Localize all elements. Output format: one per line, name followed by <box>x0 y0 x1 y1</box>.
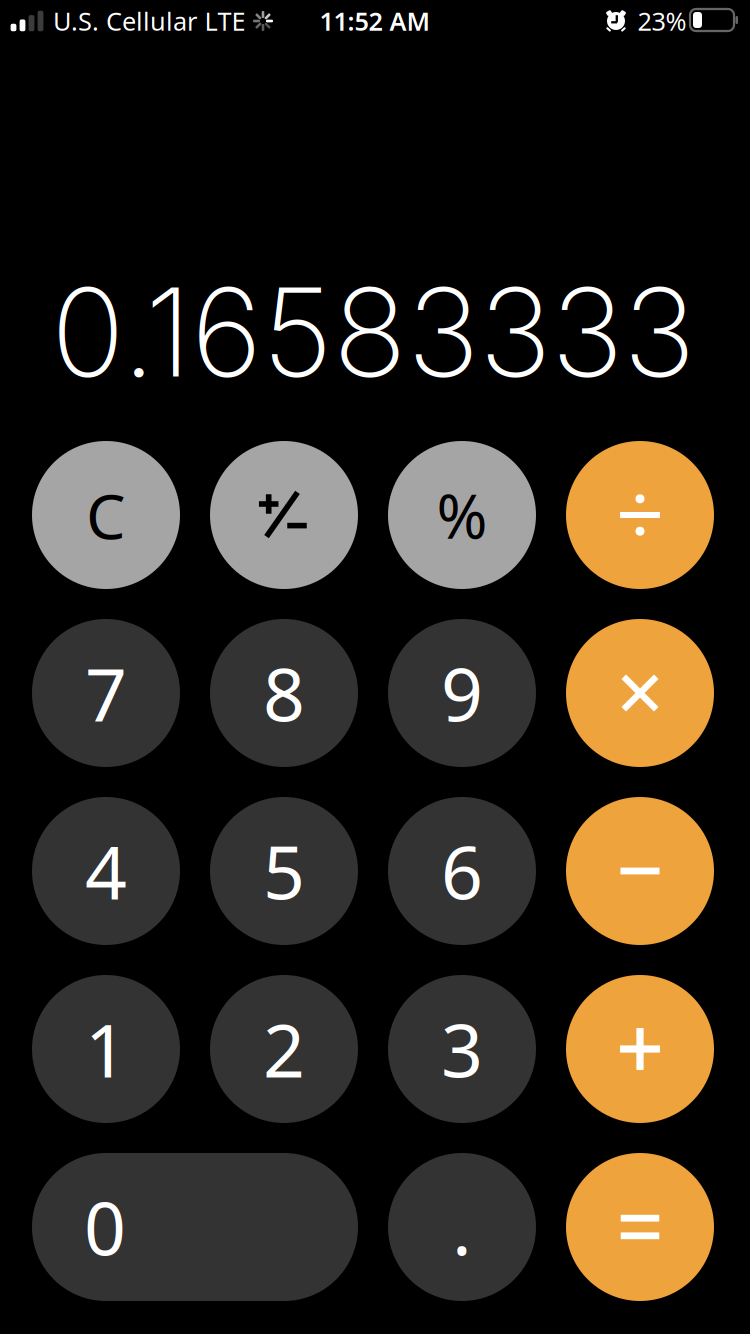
staticText: 7 <box>85 644 127 742</box>
button[interactable]: Multiply <box>566 619 714 767</box>
button[interactable]: 0 <box>32 1153 358 1301</box>
staticText: 3 <box>441 1000 483 1098</box>
button[interactable]: 1 <box>32 975 180 1123</box>
button[interactable]: 3 <box>388 975 536 1123</box>
button[interactable]: 4 <box>32 797 180 945</box>
button[interactable]: 9 <box>388 619 536 767</box>
staticText: 11:52 AM <box>319 4 430 38</box>
button[interactable]: 6 <box>388 797 536 945</box>
staticText: 4 <box>85 822 127 920</box>
staticText: % <box>436 474 487 556</box>
button[interactable]: 7 <box>32 619 180 767</box>
staticText: 0.16583333 <box>51 258 695 406</box>
button[interactable]: Plus minus <box>210 441 358 589</box>
staticText: . <box>452 1178 472 1276</box>
button[interactable]: Equals <box>566 1153 714 1301</box>
staticText: 8 <box>263 644 305 742</box>
button[interactable]: Minus <box>566 797 714 945</box>
staticText: C <box>86 473 126 557</box>
staticText: 0 <box>84 1178 126 1276</box>
button[interactable]: 8 <box>210 619 358 767</box>
staticText: LTE <box>204 4 245 38</box>
staticText: U.S. Cellular <box>53 4 197 38</box>
staticText: 2 <box>263 1000 305 1098</box>
button[interactable]: 2 <box>210 975 358 1123</box>
button[interactable]: Plus <box>566 975 714 1123</box>
staticText: 23% <box>637 4 686 38</box>
staticText: 9 <box>441 644 483 742</box>
button[interactable]: C <box>32 441 180 589</box>
staticText: 1 <box>85 1000 127 1098</box>
staticText: 6 <box>441 822 483 920</box>
button[interactable]: 5 <box>210 797 358 945</box>
staticText: 5 <box>263 822 305 920</box>
button[interactable]: Divide <box>566 441 714 589</box>
button[interactable]: % <box>388 441 536 589</box>
button[interactable]: . <box>388 1153 536 1301</box>
